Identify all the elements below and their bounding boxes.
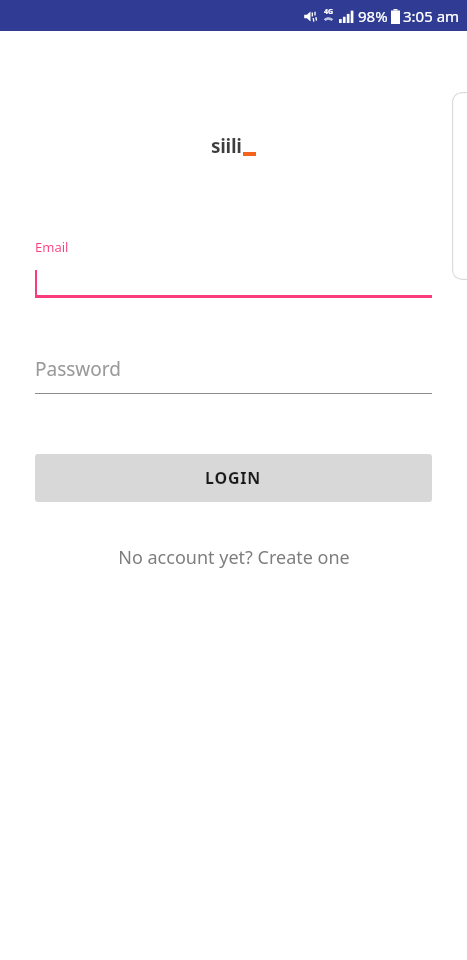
staticText: siili [211,133,242,159]
staticText: 3:05 am [403,6,460,26]
button[interactable]: No account yet? Create one [0,540,467,574]
staticText: Email [35,238,69,256]
button[interactable]: Password [35,355,432,394]
button[interactable]: LOGIN [35,454,432,502]
staticText: LOGIN [205,467,262,489]
staticText: Password [35,356,121,382]
staticText: No account yet? Create one [118,545,350,570]
staticText: 4G [324,7,334,17]
button[interactable]: Email [35,238,432,298]
staticText: 98% [358,6,388,26]
